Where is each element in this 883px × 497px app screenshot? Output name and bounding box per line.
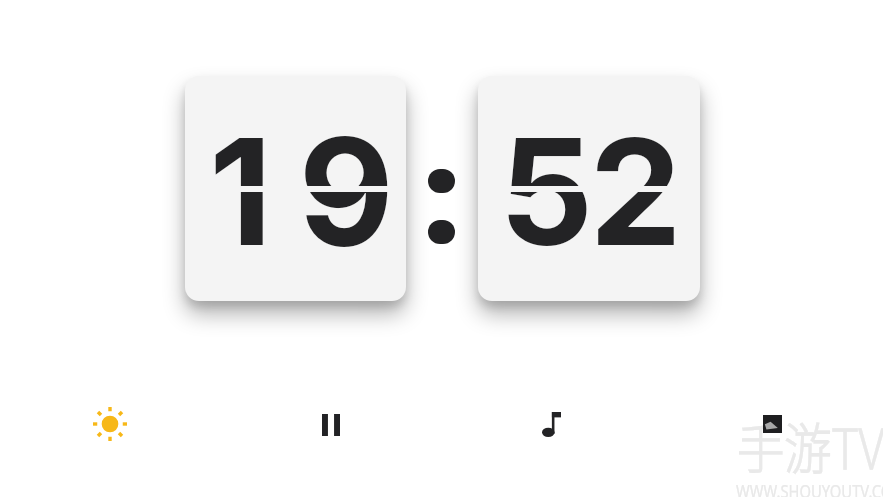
staticText: WWW.SHOUYOUTV.COM xyxy=(736,479,883,497)
staticText: 19 xyxy=(209,103,406,281)
staticText: 手游TV xyxy=(737,405,883,485)
button[interactable]: Background xyxy=(754,406,790,442)
button[interactable]: Music xyxy=(527,400,575,448)
staticText: 52 xyxy=(499,103,678,281)
button[interactable]: Pause xyxy=(307,401,355,449)
button[interactable]: Brightness xyxy=(86,400,134,448)
